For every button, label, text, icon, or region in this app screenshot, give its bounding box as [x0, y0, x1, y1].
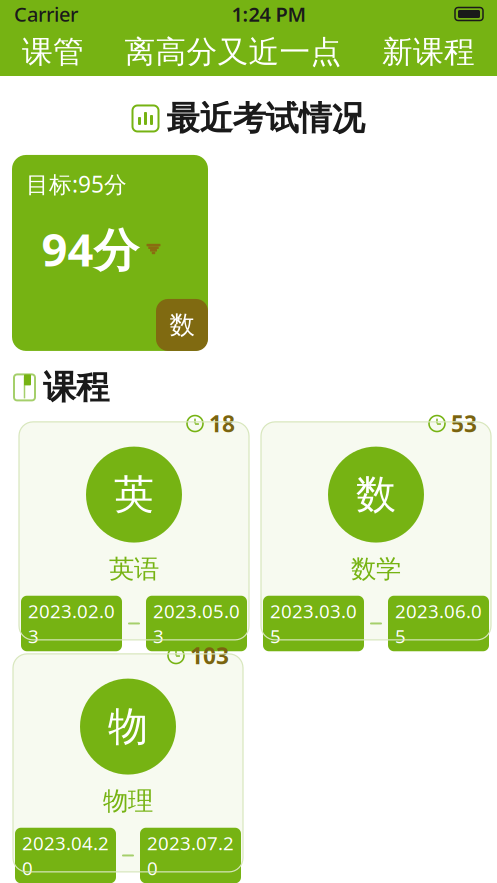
staticText: 1:24 PM — [231, 1, 306, 27]
staticText: 103 — [190, 640, 229, 671]
staticText: 2023.02.03 — [28, 599, 115, 648]
staticText: 课程 — [43, 367, 109, 408]
staticText: 数 — [169, 309, 194, 340]
staticText: 英 — [114, 470, 154, 519]
button[interactable]: 新课程 — [372, 27, 485, 77]
staticText: Carrier — [14, 1, 78, 27]
staticText: 2023.07.20 — [147, 831, 234, 880]
button[interactable]: 课管 — [12, 27, 94, 77]
staticText: 2023.04.20 — [22, 831, 109, 880]
button[interactable]: 18 — [19, 422, 249, 640]
staticText: 英语 — [109, 554, 159, 585]
staticText: 最近考试情况 — [166, 98, 364, 139]
staticText: 课管 — [22, 33, 84, 71]
staticText: 数学 — [351, 554, 401, 585]
staticText: 数 — [356, 470, 396, 519]
staticText: 53 — [451, 408, 477, 439]
staticText: 物理 — [103, 786, 153, 817]
staticText: 94分 — [41, 219, 138, 279]
button[interactable]: 53 — [261, 422, 491, 640]
staticText: 2023.03.05 — [270, 599, 357, 648]
button[interactable]: 103 — [13, 654, 243, 872]
button[interactable]: 目标:95分 — [12, 155, 208, 351]
staticText: 2023.06.05 — [395, 599, 482, 648]
staticText: 18 — [209, 408, 235, 439]
staticText: 新课程 — [382, 33, 475, 71]
staticText: 2023.05.03 — [153, 599, 240, 648]
staticText: 物 — [108, 702, 148, 751]
staticText: 目标:95分 — [26, 169, 127, 199]
staticText: 离高分又近一点 — [124, 33, 341, 71]
